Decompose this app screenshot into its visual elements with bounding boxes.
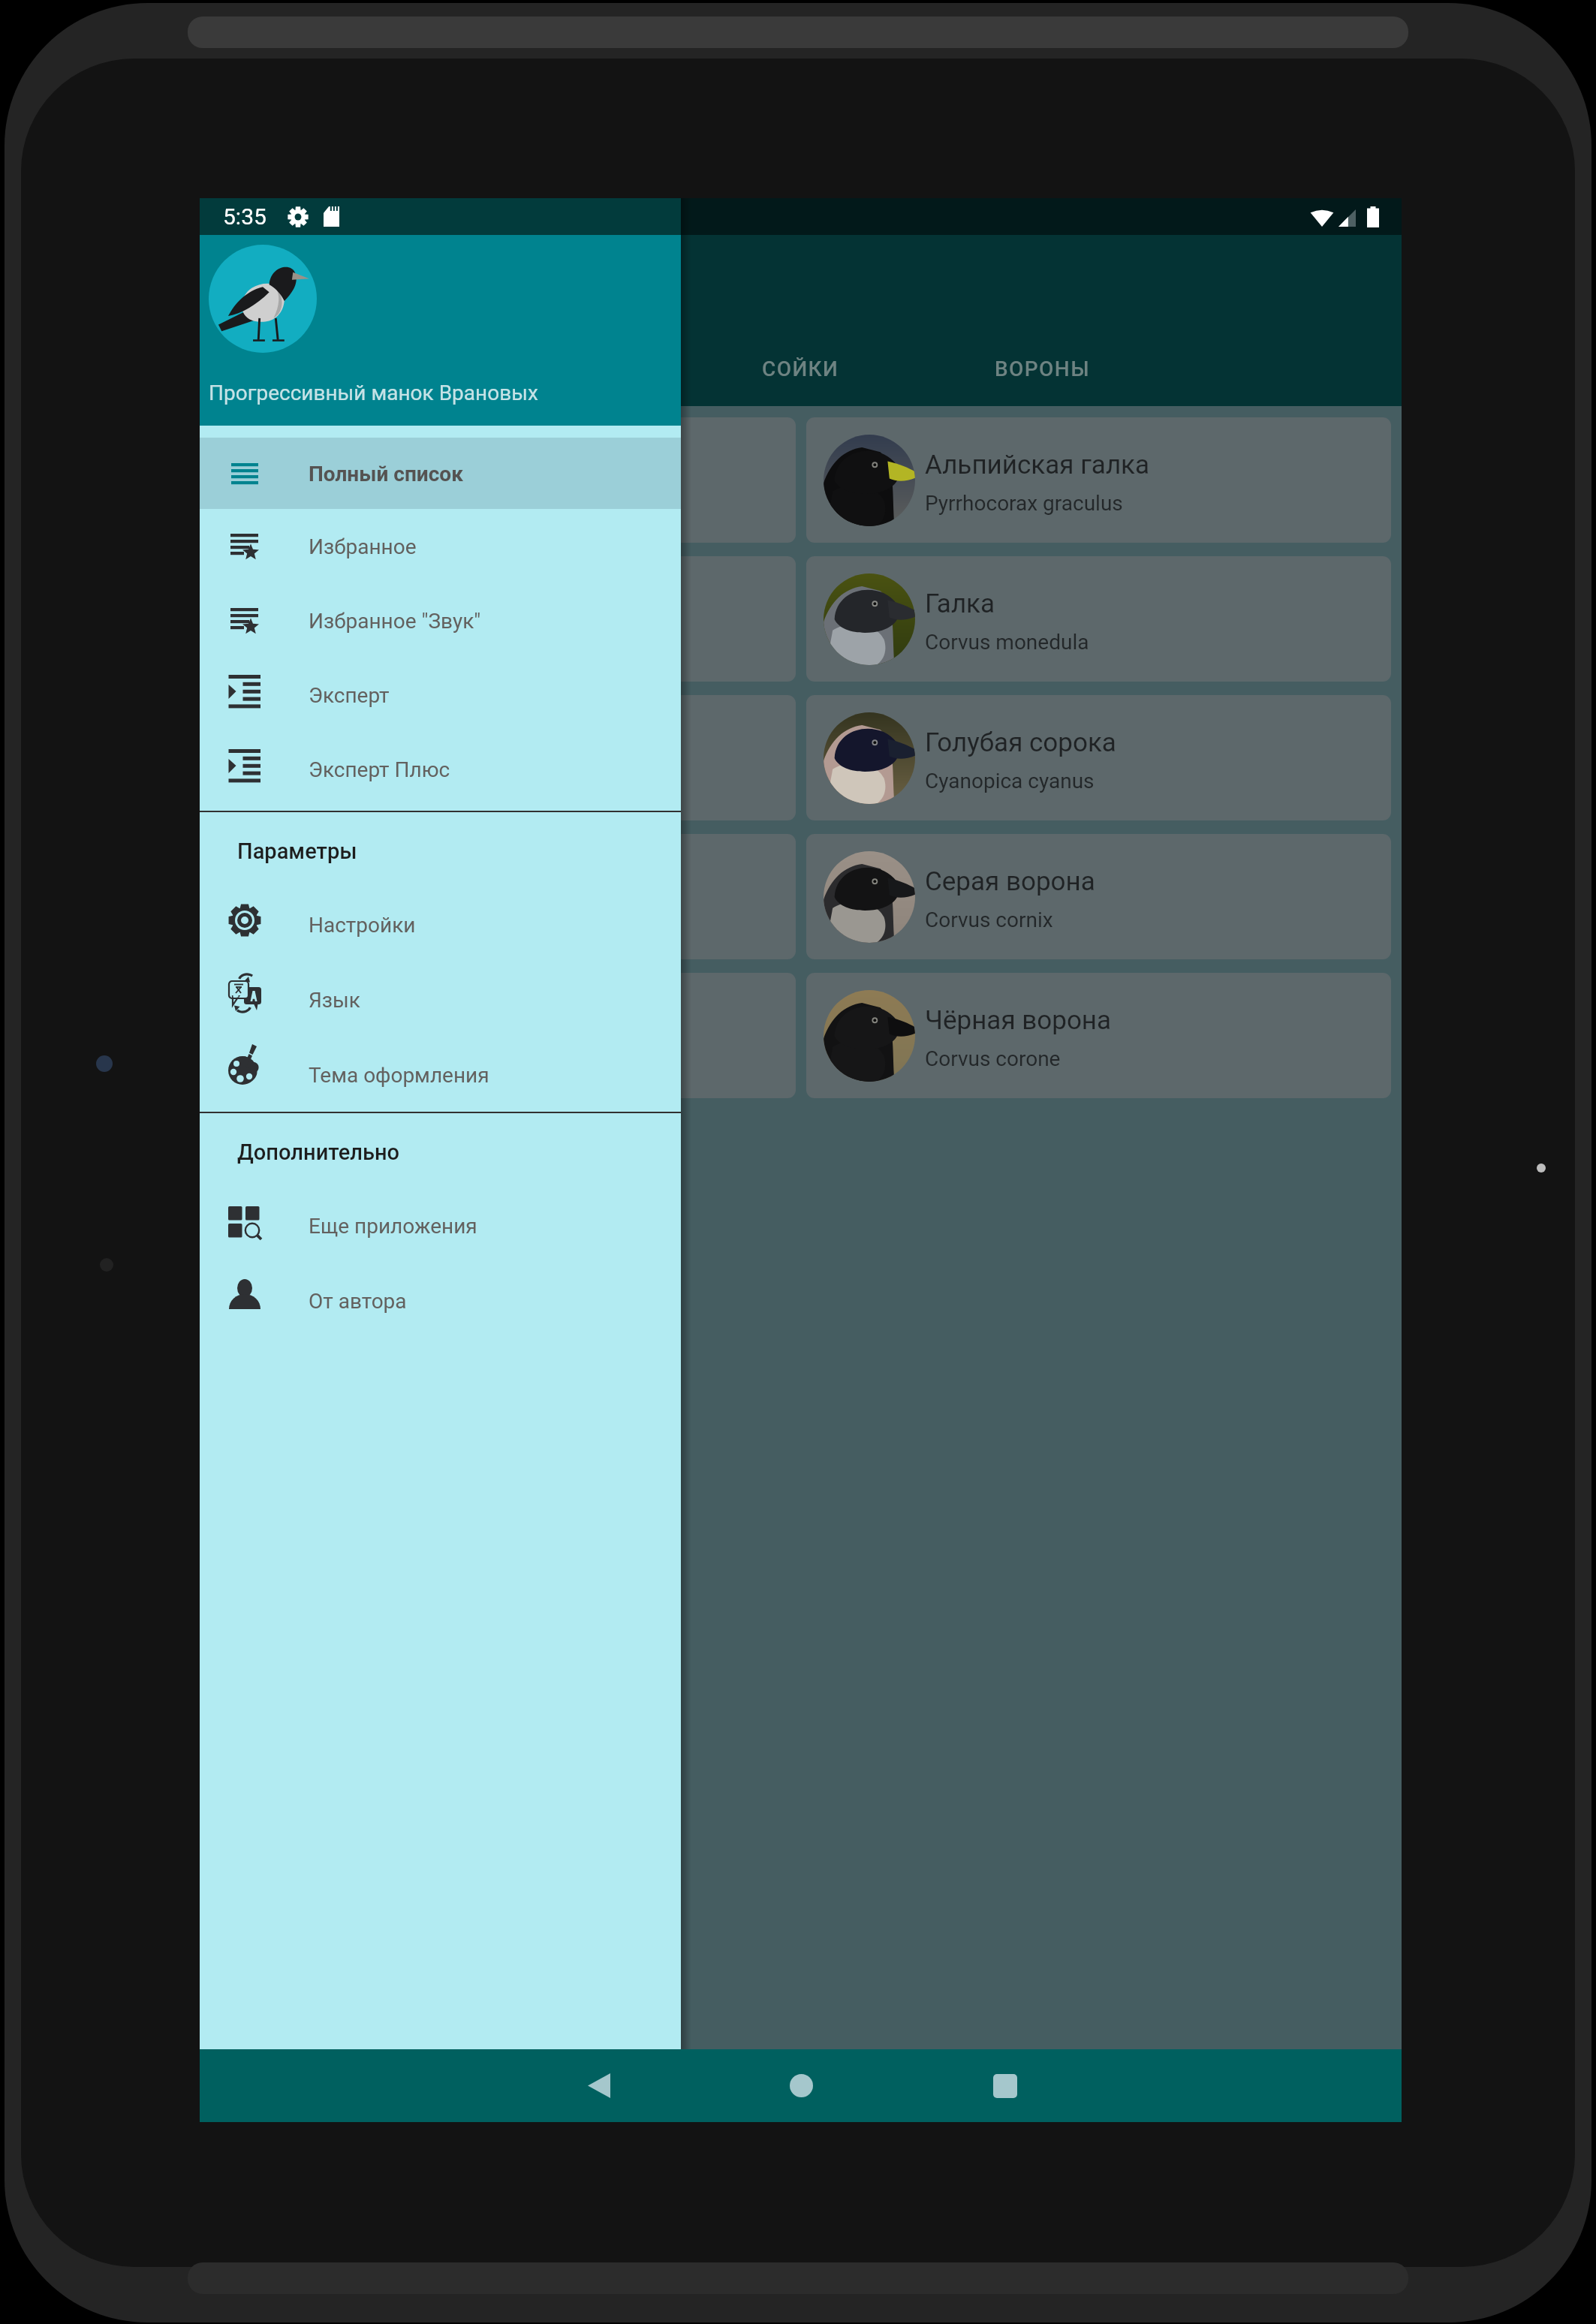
button[interactable]: Чёрная ворона [211, 973, 796, 1098]
staticText: Дополнительно [237, 1139, 400, 1165]
staticText: Еще приложения [309, 1214, 477, 1239]
staticText: Эксперт [309, 683, 390, 708]
button[interactable]: Чёрная ворона [806, 973, 1391, 1098]
staticText: Corvus cornix [925, 908, 1053, 932]
staticText: Язык [309, 988, 360, 1013]
staticText: СОЙКИ [762, 357, 839, 381]
button[interactable]: Еще приложения [200, 1188, 681, 1263]
staticText: Эксперт Плюс [309, 757, 450, 782]
staticText: Тема оформления [309, 1063, 489, 1088]
button[interactable]: Recent apps [960, 2049, 1050, 2122]
staticText: Серая ворона [925, 866, 1095, 897]
staticText: Галка [330, 589, 400, 619]
button[interactable]: Язык [200, 962, 681, 1037]
staticText: Corvus cornix [330, 908, 458, 932]
staticText: Полный список [309, 462, 463, 486]
button[interactable]: Back [554, 2049, 644, 2122]
staticText: Альпийская галка [330, 450, 555, 480]
button[interactable]: Галка [211, 556, 796, 682]
button[interactable]: От автора [200, 1263, 681, 1338]
staticText: Прогрессивный манок Врановых [209, 381, 538, 405]
staticText: Corvus corone [925, 1046, 1061, 1071]
staticText: От автора [309, 1289, 407, 1314]
staticText: Параметры [237, 838, 357, 864]
button[interactable]: Настройки [200, 887, 681, 962]
button[interactable]: Галка [806, 556, 1391, 682]
staticText: 5:35 [223, 203, 267, 230]
button[interactable]: ГАЛКИ [438, 332, 679, 406]
staticText: Corvus corone [330, 1046, 465, 1071]
button[interactable]: СОЙКИ [679, 332, 921, 406]
button[interactable]: Тема оформления [200, 1037, 681, 1112]
button[interactable]: Серая ворона [806, 834, 1391, 959]
staticText: Pyrrhocorax graculus [925, 491, 1123, 516]
staticText: Альпийская галка [925, 450, 1150, 480]
button[interactable]: Альпийская галка [211, 417, 796, 543]
staticText: Чёрная ворона [925, 1005, 1112, 1036]
button[interactable]: Серая ворона [211, 834, 796, 959]
staticText: Чёрная ворона [330, 1005, 516, 1036]
button[interactable]: Полный список [200, 438, 681, 509]
staticText: ВОРОНЫ [995, 357, 1090, 381]
staticText: Настройки [309, 913, 416, 938]
button[interactable]: Голубая сорока [806, 695, 1391, 820]
button[interactable]: Эксперт Плюс [200, 732, 681, 806]
staticText: Избранное "Звук" [309, 609, 481, 634]
button[interactable]: Home [756, 2049, 846, 2122]
button[interactable]: ВОРОНЫ [921, 332, 1163, 406]
staticText: Избранное [309, 534, 417, 559]
button[interactable]: ВОРОНЫ [196, 332, 438, 406]
staticText: Cyanopica cyanus [330, 769, 499, 793]
button[interactable]: Альпийская галка [806, 417, 1391, 543]
staticText: Corvus monedula [925, 630, 1089, 655]
staticText: Corvus monedula [330, 630, 494, 655]
button[interactable]: Избранное [200, 509, 681, 583]
staticText: Cyanopica cyanus [925, 769, 1095, 793]
staticText: Галка [925, 589, 995, 619]
button[interactable]: Избранное "Звук" [200, 583, 681, 658]
staticText: Pyrrhocorax graculus [330, 491, 528, 516]
staticText: Голубая сорока [925, 727, 1116, 758]
button[interactable]: Голубая сорока [211, 695, 796, 820]
button[interactable]: Эксперт [200, 658, 681, 732]
